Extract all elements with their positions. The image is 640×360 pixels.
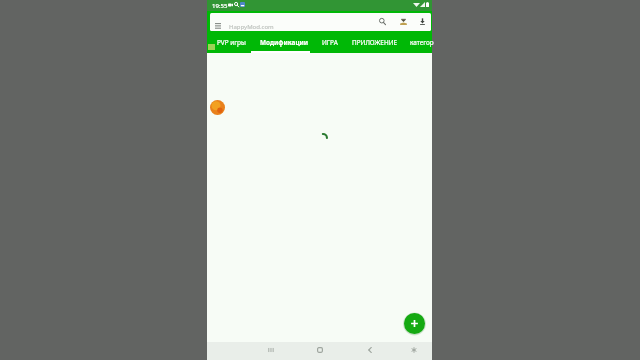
staticText: ИГРА	[322, 38, 338, 47]
button[interactable]: Back	[362, 342, 378, 358]
button[interactable]: Recents	[263, 342, 279, 358]
button[interactable]: категор	[410, 32, 434, 53]
staticText: Модификации	[260, 38, 309, 47]
button[interactable]: Downloads	[415, 11, 429, 32]
button[interactable]: Add	[404, 313, 425, 334]
button[interactable]: Address bar	[210, 13, 431, 31]
button[interactable]: Assistant	[406, 342, 422, 358]
staticText: ПРИЛОЖЕНИЕ	[352, 38, 398, 47]
button[interactable]: ПРИЛОЖЕНИЕ	[352, 32, 398, 53]
button[interactable]: Premium	[396, 11, 410, 32]
staticText: PVP игры	[217, 38, 246, 47]
staticText: HappyMod.com	[229, 23, 274, 31]
staticText: категор	[410, 38, 434, 47]
button[interactable]: ИГРА	[322, 32, 338, 53]
staticText: 19:55	[212, 2, 228, 10]
button[interactable]: Menu	[215, 23, 221, 29]
button[interactable]: Home	[312, 342, 328, 358]
button[interactable]: Модификации	[260, 32, 309, 53]
button[interactable]: Search	[375, 11, 389, 32]
button[interactable]: PVP игры	[217, 32, 246, 53]
button[interactable]: Promo	[210, 100, 225, 115]
